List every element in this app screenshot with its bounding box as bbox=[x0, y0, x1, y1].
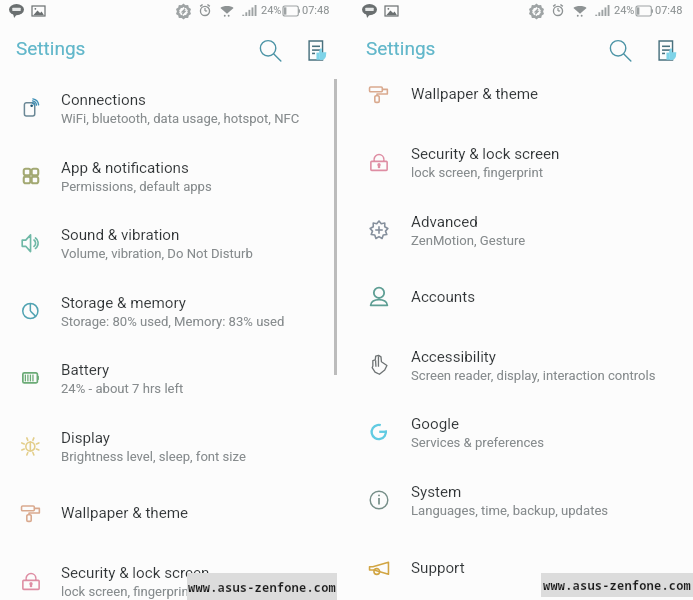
button[interactable]: Support bbox=[347, 534, 693, 600]
button[interactable]: Search bbox=[601, 31, 639, 69]
button[interactable]: Storage & memory bbox=[0, 277, 347, 345]
staticText: 24% bbox=[614, 4, 635, 17]
staticText: Sound & vibration bbox=[61, 226, 180, 244]
staticText: Connections bbox=[61, 91, 146, 109]
staticText: www.asus-zenfone.com bbox=[188, 579, 337, 595]
button[interactable]: Connections bbox=[0, 74, 347, 142]
button[interactable]: Feedback bbox=[298, 31, 336, 69]
button[interactable]: Accessibility bbox=[347, 331, 693, 399]
button[interactable]: Security & lock screen bbox=[347, 128, 693, 196]
staticText: Security & lock screen bbox=[61, 564, 210, 582]
staticText: 07:48 bbox=[302, 4, 330, 17]
button[interactable]: System bbox=[347, 466, 693, 534]
button[interactable]: Wallpaper & theme bbox=[0, 479, 347, 547]
staticText: 07:48 bbox=[655, 4, 683, 17]
staticText: 24% bbox=[261, 4, 282, 17]
staticText: Services & preferences bbox=[411, 435, 544, 450]
staticText: System bbox=[411, 483, 462, 501]
staticText: Storage & memory bbox=[61, 294, 186, 312]
staticText: Accessibility bbox=[411, 348, 496, 366]
staticText: lock screen, fingerprint bbox=[61, 584, 193, 599]
button[interactable]: Search bbox=[251, 31, 289, 69]
staticText: Wallpaper & theme bbox=[61, 504, 189, 522]
staticText: Screen reader, display, interaction cont… bbox=[411, 368, 656, 383]
button[interactable]: Sound & vibration bbox=[0, 209, 347, 277]
button[interactable]: Wallpaper & theme bbox=[347, 60, 693, 128]
staticText: Security & lock screen bbox=[411, 145, 560, 163]
staticText: Storage: 80% used, Memory: 83% used bbox=[61, 314, 285, 329]
button[interactable]: Advanced bbox=[347, 196, 693, 264]
staticText: Advanced bbox=[411, 213, 478, 231]
staticText: 24% - about 7 hrs left bbox=[61, 381, 184, 396]
staticText: Settings bbox=[16, 37, 86, 59]
staticText: Permissions, default apps bbox=[61, 179, 212, 194]
staticText: Accounts bbox=[411, 288, 476, 306]
staticText: Volume, vibration, Do Not Disturb bbox=[61, 246, 253, 261]
staticText: ZenMotion, Gesture bbox=[411, 233, 526, 248]
staticText: Wallpaper & theme bbox=[411, 85, 539, 103]
staticText: Support bbox=[411, 559, 465, 577]
button[interactable]: Google bbox=[347, 398, 693, 466]
button[interactable]: Feedback bbox=[648, 31, 686, 69]
staticText: Battery bbox=[61, 361, 110, 379]
staticText: App & notifications bbox=[61, 159, 189, 177]
button[interactable]: App & notifications bbox=[0, 142, 347, 210]
staticText: Languages, time, backup, updates bbox=[411, 503, 609, 518]
button[interactable]: Security & lock screen bbox=[0, 547, 347, 600]
staticText: Brightness level, sleep, font size bbox=[61, 449, 246, 464]
button[interactable]: Accounts bbox=[347, 263, 693, 331]
staticText: Display bbox=[61, 429, 111, 447]
staticText: Google bbox=[411, 415, 459, 433]
staticText: lock screen, fingerprint bbox=[411, 165, 543, 180]
button[interactable]: Battery bbox=[0, 344, 347, 412]
button[interactable]: Display bbox=[0, 412, 347, 480]
staticText: Settings bbox=[366, 37, 436, 59]
staticText: WiFi, bluetooth, data usage, hotspot, NF… bbox=[61, 111, 300, 126]
staticText: www.asus-zenfone.com bbox=[543, 577, 692, 593]
